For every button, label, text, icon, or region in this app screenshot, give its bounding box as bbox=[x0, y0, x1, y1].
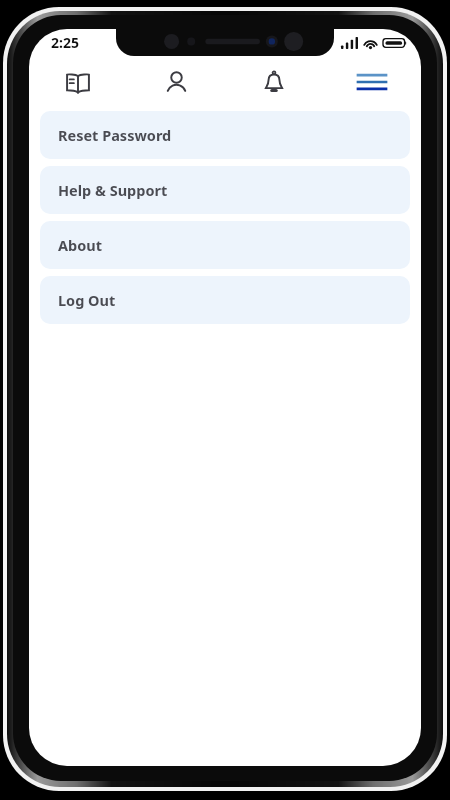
button[interactable]: Log Out bbox=[40, 276, 410, 324]
button[interactable]: Reset Password bbox=[40, 111, 410, 159]
staticText: Help & Support bbox=[58, 180, 168, 200]
staticText: 2:25 bbox=[51, 33, 79, 52]
staticText: Log Out bbox=[58, 290, 116, 310]
button[interactable]: Profile bbox=[127, 57, 225, 107]
button[interactable]: Library bbox=[29, 57, 127, 107]
staticText: Reset Password bbox=[58, 125, 172, 145]
button[interactable]: Notifications bbox=[225, 57, 323, 107]
button[interactable]: Help & Support bbox=[40, 166, 410, 214]
button[interactable]: About bbox=[40, 221, 410, 269]
button[interactable]: Menu bbox=[323, 57, 421, 107]
staticText: About bbox=[58, 235, 102, 255]
